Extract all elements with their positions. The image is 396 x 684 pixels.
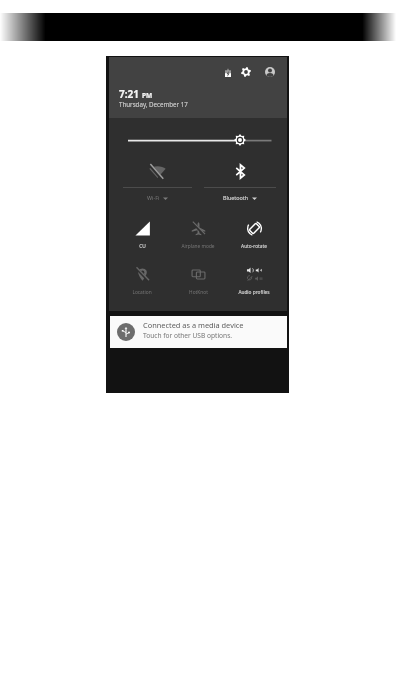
button[interactable]: User account xyxy=(261,63,279,81)
button[interactable]: Auto-rotate xyxy=(226,213,282,257)
button[interactable]: Bluetooth xyxy=(197,156,283,203)
button[interactable]: Audio profiles xyxy=(226,259,282,303)
staticText: PM xyxy=(142,91,153,100)
staticText: Wi-Fi xyxy=(147,194,160,201)
staticText: Auto-rotate xyxy=(241,243,267,250)
button[interactable]: Airplane mode xyxy=(170,213,226,257)
button[interactable]: HotKnot xyxy=(170,259,226,303)
button[interactable]: Battery status xyxy=(219,63,237,81)
button[interactable]: Settings xyxy=(237,63,255,81)
button[interactable]: Location xyxy=(114,259,170,303)
staticText: Touch for other USB options. xyxy=(143,331,233,340)
staticText: Location xyxy=(132,289,152,296)
staticText: Thursday, December 17 xyxy=(119,100,188,108)
button[interactable]: CU xyxy=(114,213,170,257)
staticText: Audio profiles xyxy=(238,289,270,296)
staticText: HotKnot xyxy=(189,289,208,296)
staticText: 7:21 xyxy=(119,87,139,101)
staticText: Bluetooth xyxy=(223,194,249,201)
staticText: Airplane mode xyxy=(181,243,215,250)
button[interactable]: Connected as a media device xyxy=(110,316,287,348)
button[interactable]: Wi-Fi xyxy=(114,156,200,203)
staticText: Connected as a media device xyxy=(143,320,244,330)
staticText: CU xyxy=(139,243,146,250)
